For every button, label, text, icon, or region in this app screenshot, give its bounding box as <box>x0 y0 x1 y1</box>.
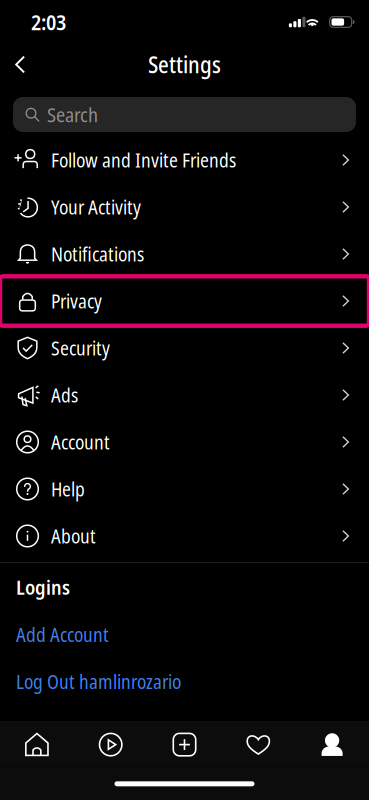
button[interactable]: Back <box>1 44 39 84</box>
staticText: Account <box>51 429 110 455</box>
button[interactable]: About <box>0 512 369 559</box>
button[interactable]: Home <box>0 722 74 768</box>
staticText: Add Account <box>16 621 109 648</box>
button[interactable]: Reels <box>74 722 148 768</box>
button[interactable]: Follow and Invite Friends <box>0 136 369 183</box>
staticText: 2:03 <box>31 7 66 37</box>
staticText: Help <box>51 476 85 502</box>
button[interactable]: Help <box>0 465 369 512</box>
button[interactable]: Profile <box>295 722 369 768</box>
button[interactable]: Activity <box>221 722 295 768</box>
button[interactable]: Add Account <box>0 611 369 658</box>
button[interactable]: Log Out hamlinrozario <box>0 658 369 705</box>
staticText: Search <box>47 101 98 128</box>
staticText: Follow and Invite Friends <box>51 147 236 173</box>
button[interactable]: Create <box>148 722 221 768</box>
staticText: Privacy <box>51 288 102 314</box>
button[interactable]: Security <box>0 324 369 371</box>
staticText: Ads <box>51 382 78 408</box>
button[interactable]: Search <box>13 97 356 132</box>
staticText: Security <box>51 335 110 361</box>
staticText: Your Activity <box>51 194 141 220</box>
button[interactable]: Ads <box>0 371 369 418</box>
staticText: Logins <box>16 573 70 601</box>
staticText: About <box>51 523 96 549</box>
button[interactable]: Account <box>0 418 369 465</box>
staticText: Log Out hamlinrozario <box>16 668 181 695</box>
button[interactable]: Your Activity <box>0 183 369 230</box>
button[interactable]: Notifications <box>0 230 369 277</box>
staticText: Notifications <box>51 241 144 267</box>
staticText: Settings <box>148 49 221 80</box>
button[interactable]: Privacy <box>0 277 369 324</box>
